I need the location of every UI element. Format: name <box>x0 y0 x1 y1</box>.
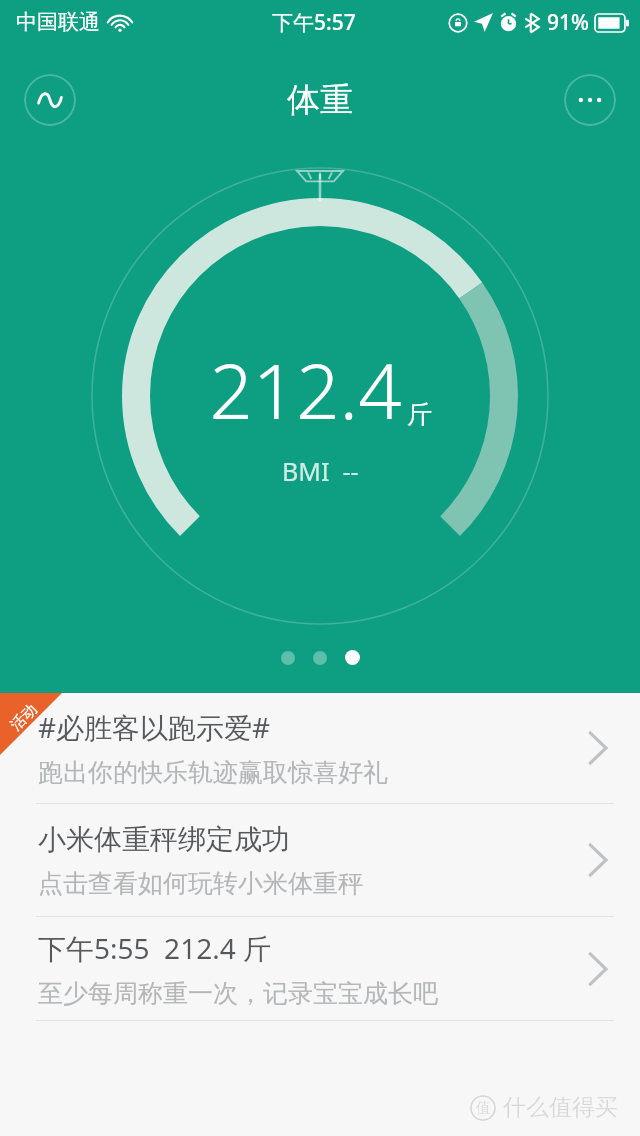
staticText: BMI -- <box>282 454 359 488</box>
staticText: 点击查看如何玩转小米体重秤 <box>38 868 363 899</box>
staticText: 斤 <box>407 399 432 430</box>
staticText: 下午5:57 <box>272 8 356 37</box>
staticText: 值 <box>476 1099 491 1118</box>
staticText: 91% <box>547 8 589 37</box>
button[interactable]: 小米体重秤绑定成功 <box>0 804 640 916</box>
button[interactable]: More options <box>564 74 616 126</box>
staticText: 至少每周称重一次，记录宝宝成长吧 <box>38 978 438 1009</box>
staticText: 中国联通 <box>16 9 100 35</box>
staticText: 小米体重秤绑定成功 <box>38 822 290 857</box>
staticText: 什么值得买 <box>503 1093 618 1122</box>
button[interactable]: Weight trend <box>24 74 76 126</box>
staticText: 活动 <box>7 700 41 735</box>
staticText: 体重 <box>287 79 353 121</box>
staticText: 跑出你的快乐轨迹赢取惊喜好礼 <box>38 757 388 788</box>
button[interactable]: 下午5:55 212.4 斤 <box>0 917 640 1020</box>
staticText: #必胜客以跑示爱# <box>38 708 271 746</box>
button[interactable]: #必胜客以跑示爱# <box>0 693 640 803</box>
staticText: 下午5:55 212.4 斤 <box>38 929 271 967</box>
staticText: 212.4 <box>209 338 402 442</box>
